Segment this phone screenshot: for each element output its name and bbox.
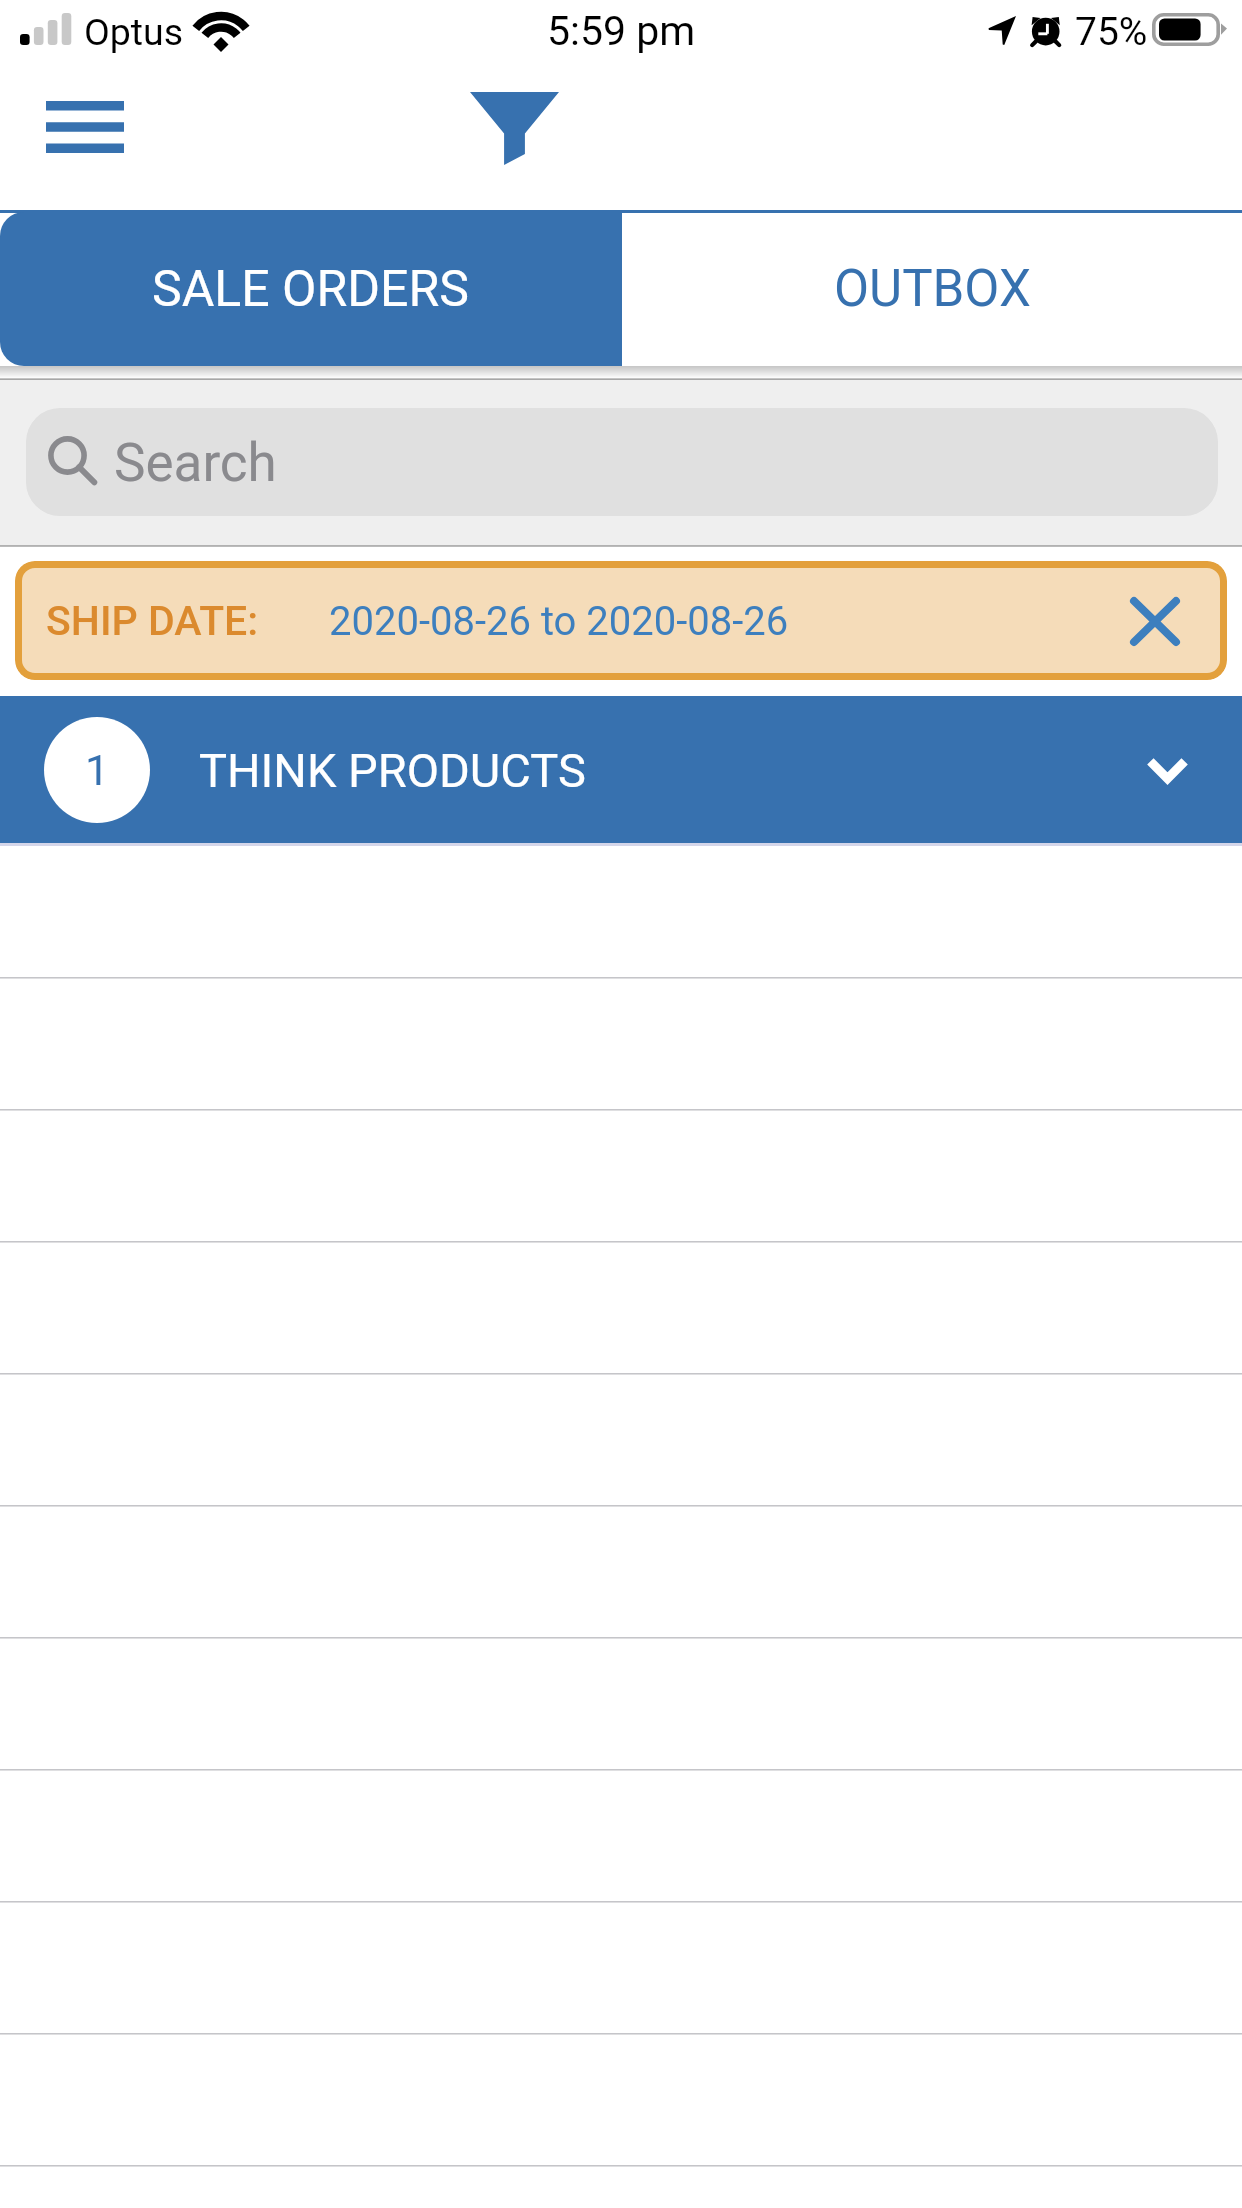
staticText: SHIP DATE: [46,597,259,645]
button[interactable]: Collapse group [1127,730,1207,810]
staticText: SALE ORDERS [152,260,469,319]
button[interactable]: OUTBOX [622,212,1242,366]
button[interactable]: SALE ORDERS [0,212,621,366]
staticText: THINK PRODUCTS [199,743,586,798]
staticText: 5:59 pm [547,7,696,55]
button[interactable]: SHIP DATE: [15,561,1227,680]
staticText: 1 [85,745,110,795]
staticText: Optus [84,10,184,54]
button[interactable]: Menu [10,67,160,187]
button[interactable]: 1 [0,696,1242,843]
staticText: 75% [1075,9,1148,55]
button[interactable]: Search [26,408,1218,516]
staticText: 2020-08-26 to 2020-08-26 [329,598,789,645]
button[interactable]: Filter [454,73,574,183]
staticText: OUTBOX [834,259,1031,319]
button[interactable]: Clear ship date filter [1117,583,1193,659]
staticText: Search [114,432,277,494]
